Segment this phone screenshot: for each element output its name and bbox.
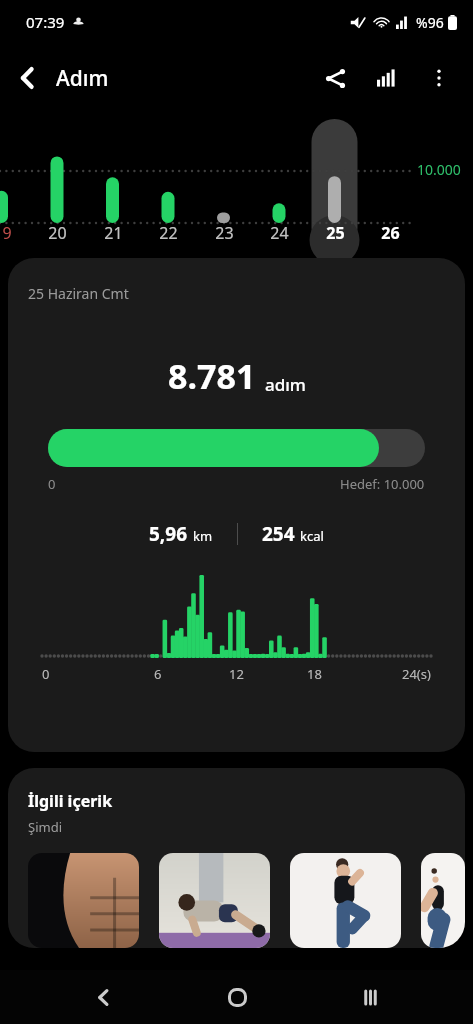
button[interactable]: Back xyxy=(0,50,56,106)
staticText: %96 xyxy=(416,13,444,32)
staticText: Adım xyxy=(56,64,109,93)
button[interactable]: Related content item xyxy=(421,853,465,948)
staticText: km xyxy=(193,527,213,545)
button[interactable]: Share xyxy=(309,52,361,104)
staticText: kcal xyxy=(300,527,324,545)
staticText: 18 xyxy=(307,665,322,683)
staticText: 25 xyxy=(326,222,345,244)
staticText: 23 xyxy=(215,222,234,244)
button[interactable]: More options xyxy=(413,52,465,104)
staticText: 24(s) xyxy=(402,665,431,683)
staticText: 10.000 xyxy=(417,160,461,179)
staticText: 12 xyxy=(229,665,244,683)
button[interactable]: 23 xyxy=(202,219,246,247)
staticText: adım xyxy=(265,373,306,396)
button[interactable]: 19 xyxy=(0,219,24,247)
staticText: 21 xyxy=(104,222,123,244)
button[interactable]: 25 xyxy=(313,219,357,247)
staticText: 24 xyxy=(270,222,289,244)
button[interactable]: Related content item xyxy=(28,853,139,948)
button[interactable]: Recent apps xyxy=(339,970,401,1024)
button[interactable]: Related content item xyxy=(159,853,270,948)
staticText: 22 xyxy=(159,222,178,244)
button[interactable]: 21 xyxy=(91,219,135,247)
staticText: 20 xyxy=(48,222,67,244)
staticText: 26 xyxy=(381,222,400,244)
staticText: 25 Haziran Cmt xyxy=(28,284,129,303)
staticText: 0 xyxy=(42,665,50,683)
staticText: 19 xyxy=(0,222,12,244)
button[interactable]: 20 xyxy=(35,219,79,247)
button[interactable]: 26 xyxy=(368,219,412,247)
staticText: Hedef: 10.000 xyxy=(340,475,425,493)
staticText: 07:39 xyxy=(26,12,65,32)
button[interactable]: 22 xyxy=(146,219,190,247)
staticText: 0 xyxy=(48,475,56,493)
staticText: 5,96 xyxy=(149,521,188,547)
staticText: Şimdi xyxy=(28,818,62,836)
button[interactable]: Related content item xyxy=(290,853,401,948)
staticText: 254 xyxy=(262,521,295,547)
button[interactable]: Back xyxy=(72,970,134,1024)
staticText: 6 xyxy=(154,665,162,683)
button[interactable]: 24 xyxy=(257,219,301,247)
staticText: İlgili içerik xyxy=(28,790,113,812)
button[interactable]: Statistics xyxy=(361,52,413,104)
button[interactable]: 25 Haziran Cmt xyxy=(8,258,465,752)
staticText: 8.781 xyxy=(168,353,256,399)
button[interactable]: Home xyxy=(206,970,268,1024)
